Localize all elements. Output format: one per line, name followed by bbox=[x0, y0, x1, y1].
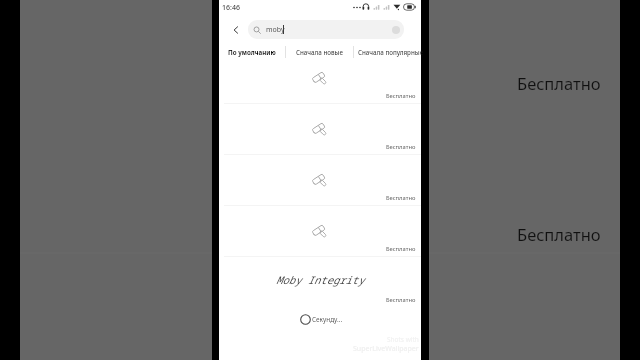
button[interactable]: Clear search bbox=[392, 26, 400, 34]
staticText: Секунду... bbox=[312, 315, 343, 324]
button[interactable]: Бесплатно bbox=[219, 155, 421, 205]
staticText: Бесплатно bbox=[386, 194, 416, 202]
button[interactable]: Бесплатно bbox=[219, 206, 421, 256]
button[interactable]: moby bbox=[248, 20, 404, 39]
button[interactable]: Сначала популярные bbox=[354, 42, 421, 62]
staticText: 16:46 bbox=[222, 3, 240, 13]
staticText: SuperLiveWallpaper bbox=[353, 344, 419, 354]
staticText: Сначала популярные bbox=[358, 48, 424, 56]
button[interactable]: Бесплатно bbox=[219, 64, 421, 103]
staticText: moby bbox=[266, 25, 285, 35]
staticText: Shots with bbox=[387, 335, 419, 344]
staticText: Moby Integrity bbox=[276, 273, 365, 287]
staticText: Бесплатно bbox=[386, 245, 416, 253]
button[interactable]: Moby Integrity bbox=[219, 257, 421, 308]
staticText: Бесплатно bbox=[386, 143, 416, 151]
staticText: По умолчанию bbox=[228, 48, 276, 56]
button[interactable]: По умолчанию bbox=[219, 42, 285, 62]
staticText: Бесплатно bbox=[517, 72, 601, 94]
staticText: Бесплатно bbox=[386, 296, 416, 304]
staticText: Бесплатно bbox=[517, 223, 601, 245]
button[interactable]: Бесплатно bbox=[219, 104, 421, 154]
button[interactable]: Back bbox=[226, 20, 245, 39]
staticText: Бесплатно bbox=[386, 92, 416, 100]
staticText: Сначала новые bbox=[296, 48, 343, 56]
button[interactable]: Сначала новые bbox=[286, 42, 353, 62]
